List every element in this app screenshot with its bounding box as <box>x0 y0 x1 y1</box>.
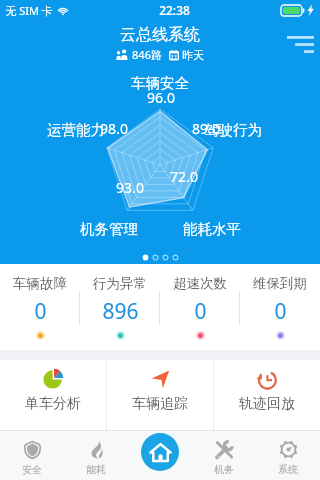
staticText: 行为异常 <box>93 275 147 292</box>
staticText: 驾驶行为 <box>204 121 262 139</box>
staticText: 0 <box>34 297 47 326</box>
button[interactable]: 能耗 <box>64 430 128 480</box>
staticText: 轨迹回放 <box>239 395 295 413</box>
staticText: 0 <box>194 297 207 326</box>
button[interactable]: 车辆故障 <box>0 264 80 350</box>
button[interactable]: 机务 <box>192 430 256 480</box>
staticText: 车辆故障 <box>13 275 67 292</box>
staticText: 93.0 <box>116 178 144 197</box>
staticText: 89.0 <box>192 119 220 138</box>
button[interactable]: 单车分析 <box>0 360 106 430</box>
staticText: 能耗水平 <box>183 220 241 238</box>
staticText: 超速次数 <box>173 275 227 292</box>
staticText: 安全 <box>22 463 42 476</box>
staticText: 车辆安全 <box>131 74 189 92</box>
staticText: 无 SIM 卡 <box>5 3 53 18</box>
staticText: 72.0 <box>170 167 198 186</box>
button[interactable]: Home <box>128 430 192 480</box>
staticText: 维保到期 <box>253 275 307 292</box>
button[interactable]: 维保到期 <box>240 264 320 350</box>
button[interactable]: 安全 <box>0 430 64 480</box>
button[interactable]: 超速次数 <box>160 264 240 350</box>
button[interactable]: 轨迹回放 <box>214 360 320 430</box>
staticText: 昨天 <box>182 48 204 62</box>
button[interactable]: 行为异常 <box>80 264 160 350</box>
button[interactable]: Menu <box>276 20 320 68</box>
staticText: 车辆追踪 <box>132 395 188 413</box>
staticText: 能耗 <box>86 463 106 476</box>
button[interactable]: 车辆追踪 <box>107 360 213 430</box>
staticText: 运营能力 <box>47 121 105 139</box>
staticText: 0 <box>274 297 287 326</box>
staticText: 云总线系统 <box>120 25 200 45</box>
staticText: 系统 <box>278 463 298 476</box>
staticText: 机务 <box>214 463 234 476</box>
staticText: 846路 <box>132 47 162 62</box>
staticText: 单车分析 <box>25 395 81 413</box>
staticText: 机务管理 <box>80 220 138 238</box>
staticText: 896 <box>102 297 139 326</box>
staticText: 96.0 <box>147 88 175 107</box>
staticText: 98.0 <box>100 119 128 138</box>
button[interactable]: 系统 <box>256 430 320 480</box>
staticText: 22:38 <box>159 2 190 18</box>
